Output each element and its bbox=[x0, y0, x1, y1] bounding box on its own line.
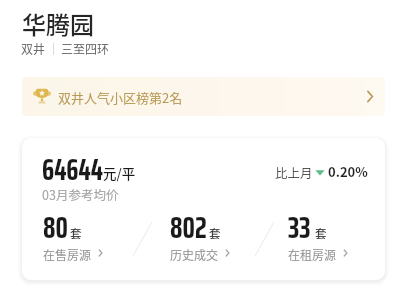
button[interactable]: 33 bbox=[288, 203, 352, 253]
other: 查看排行榜 bbox=[364, 88, 376, 105]
staticText: 元/平 bbox=[103, 163, 136, 183]
staticText: 80 bbox=[43, 203, 68, 252]
staticText: 03月参考均价 bbox=[42, 185, 119, 203]
staticText: 套 bbox=[70, 225, 82, 242]
staticText: 比上月 bbox=[275, 163, 313, 181]
button[interactable]: 802 bbox=[170, 203, 234, 253]
staticText: 套 bbox=[209, 225, 221, 242]
staticText: 历史成交 bbox=[170, 246, 219, 263]
staticText: 802 bbox=[170, 203, 207, 252]
staticText: 33 bbox=[288, 203, 311, 252]
button[interactable]: 80 bbox=[43, 203, 107, 253]
staticText: 三至四环 bbox=[61, 40, 110, 57]
staticText: 华腾园 bbox=[22, 6, 94, 41]
staticText: 双井人气小区榜第2名 bbox=[58, 88, 183, 107]
staticText: 0.20% bbox=[328, 162, 368, 181]
staticText: 双井 bbox=[21, 40, 46, 57]
staticText: 套 bbox=[315, 225, 327, 242]
staticText: 64644 bbox=[42, 145, 103, 194]
button[interactable]: 双井人气小区榜第2名 bbox=[22, 77, 385, 116]
staticText: 在租房源 bbox=[288, 246, 337, 263]
staticText: 在售房源 bbox=[43, 246, 92, 263]
